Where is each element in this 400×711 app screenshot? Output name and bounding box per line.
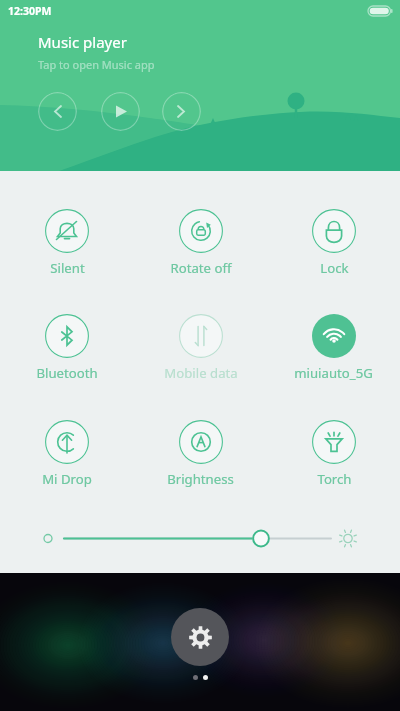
staticText: Rotate off (170, 259, 232, 277)
button[interactable]: Silent (0, 209, 134, 279)
button[interactable]: Brightness slider (0, 517, 400, 557)
button[interactable]: Settings (171, 608, 229, 666)
button[interactable]: Music player (0, 32, 400, 76)
button[interactable]: Bluetooth (0, 314, 134, 384)
button[interactable]: Mi Drop (0, 420, 134, 490)
staticText: Music player (38, 32, 127, 52)
staticText: Lock (320, 259, 349, 277)
staticText: Bluetooth (36, 364, 98, 382)
staticText: Mobile data (164, 364, 238, 382)
button[interactable]: Mobile data (134, 314, 267, 384)
staticText: Silent (50, 259, 85, 277)
button[interactable]: miuiauto_5G (267, 314, 400, 384)
staticText: Torch (317, 470, 352, 488)
staticText: Tap to open Music app (38, 57, 155, 72)
button[interactable]: Torch (267, 420, 400, 490)
button[interactable]: Previous (38, 92, 77, 131)
other: Battery (368, 4, 393, 18)
staticText: Mi Drop (42, 470, 92, 488)
button[interactable]: Rotate off (134, 209, 267, 279)
button[interactable]: Brightness (134, 420, 267, 490)
staticText: Brightness (167, 470, 234, 488)
staticText: 12:30PM (8, 4, 52, 18)
button[interactable]: Play (101, 92, 140, 131)
button[interactable]: Next (162, 92, 201, 131)
button[interactable]: Lock (267, 209, 400, 279)
staticText: miuiauto_5G (294, 364, 373, 382)
